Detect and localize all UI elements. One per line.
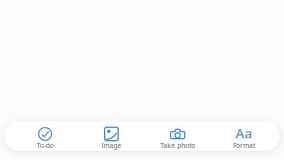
staticText: Format <box>233 141 255 150</box>
staticText: Image <box>101 141 121 150</box>
button[interactable]: To-do <box>12 121 78 151</box>
button[interactable]: Aa <box>211 121 277 151</box>
button[interactable]: Take photo <box>144 121 211 151</box>
staticText: To-do <box>37 141 54 150</box>
staticText: Take photo <box>160 141 195 150</box>
button[interactable]: Image <box>78 121 144 151</box>
staticText: Aa <box>235 124 252 142</box>
